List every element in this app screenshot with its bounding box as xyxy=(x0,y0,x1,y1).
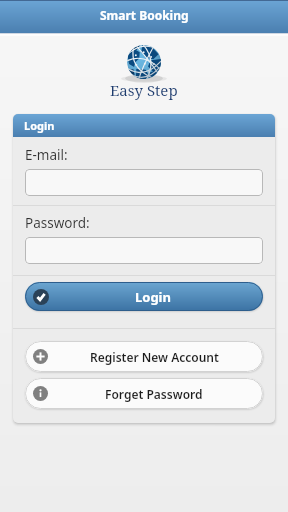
other: Login xyxy=(33,289,49,305)
button[interactable] xyxy=(25,169,263,196)
other: Easy Step logo xyxy=(124,45,164,85)
button[interactable]: Register New Account xyxy=(25,341,263,372)
button[interactable]: Login xyxy=(25,282,263,311)
staticText: Password: xyxy=(25,214,90,232)
staticText: Login xyxy=(24,118,55,133)
staticText: Easy Step xyxy=(110,80,178,100)
staticText: Forget Password xyxy=(105,386,203,402)
button[interactable]: Login xyxy=(13,114,275,137)
button[interactable]: Forget Password xyxy=(25,378,263,409)
button[interactable] xyxy=(25,237,263,264)
staticText: Smart Booking xyxy=(100,7,189,23)
staticText: Register New Account xyxy=(90,349,219,365)
staticText: E-mail: xyxy=(25,146,68,164)
staticText: Login xyxy=(135,288,171,306)
